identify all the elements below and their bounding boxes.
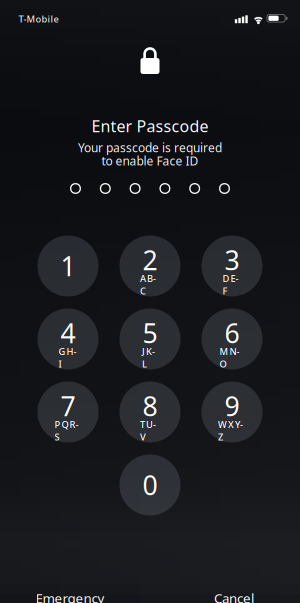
staticText: Your passcode is required bbox=[78, 139, 222, 155]
button[interactable]: 0 bbox=[119, 454, 180, 515]
staticText: 6 bbox=[224, 315, 239, 351]
staticText: Emergency bbox=[35, 589, 104, 603]
staticText: PQRS bbox=[55, 418, 81, 431]
staticText: 0 bbox=[142, 467, 157, 503]
staticText: 8 bbox=[142, 388, 157, 424]
staticText: Cancel bbox=[214, 589, 254, 603]
staticText: TUV bbox=[140, 418, 160, 431]
staticText: GHI bbox=[58, 345, 77, 358]
button[interactable]: 1 bbox=[37, 235, 98, 296]
staticText: MNO bbox=[219, 345, 244, 358]
button[interactable]: 7 bbox=[37, 381, 98, 442]
staticText: 2 bbox=[142, 242, 157, 278]
staticText: DEF bbox=[222, 272, 241, 285]
staticText: ABC bbox=[140, 272, 160, 285]
button[interactable]: 2 bbox=[119, 235, 180, 296]
staticText: to enable Face ID bbox=[101, 153, 198, 169]
staticText: 3 bbox=[224, 242, 239, 278]
staticText: 4 bbox=[60, 315, 75, 351]
staticText: T-Mobile bbox=[18, 13, 58, 25]
button[interactable]: 3 bbox=[201, 235, 262, 296]
button[interactable]: Emergency bbox=[35, 589, 104, 603]
button[interactable]: 4 bbox=[37, 308, 98, 369]
button[interactable]: Cancel bbox=[214, 589, 254, 603]
staticText: WXYZ bbox=[218, 418, 246, 431]
staticText: 5 bbox=[142, 315, 157, 351]
staticText: 9 bbox=[224, 388, 239, 424]
button[interactable]: 8 bbox=[119, 381, 180, 442]
button[interactable]: 6 bbox=[201, 308, 262, 369]
staticText: JKL bbox=[142, 345, 158, 358]
staticText: Enter Passcode bbox=[91, 115, 208, 137]
staticText: 7 bbox=[60, 388, 75, 424]
staticText: 1 bbox=[60, 248, 75, 284]
button[interactable]: 9 bbox=[201, 381, 262, 442]
button[interactable]: 5 bbox=[119, 308, 180, 369]
